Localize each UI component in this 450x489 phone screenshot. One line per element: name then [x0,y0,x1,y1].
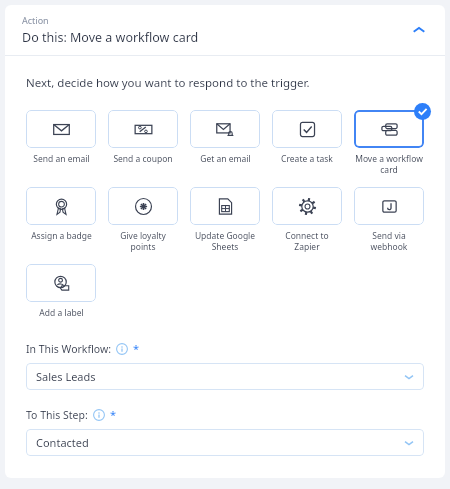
button[interactable]: Move a workflow card [354,110,424,148]
staticText: Connect to Zapier [272,230,342,252]
button[interactable]: Assign a badge [26,187,96,225]
staticText: Update Google Sheets [190,230,260,252]
staticText: * [133,341,140,356]
staticText: Contacted [36,435,404,450]
button[interactable]: Create a task [272,110,342,148]
button[interactable]: Add a label [26,264,96,302]
button[interactable]: Get an email [190,110,260,148]
staticText: Add a label [39,307,84,319]
button[interactable]: Info [116,343,128,355]
staticText: Get an email [200,153,251,165]
button[interactable]: Connect to Zapier [272,187,342,225]
staticText: Send via webhook [354,230,424,252]
button[interactable]: Sales Leads [26,363,424,390]
button[interactable]: Send an email [26,110,96,148]
staticText: Send an email [33,153,90,165]
staticText: Move a workflow card [354,153,424,175]
button[interactable]: Info [93,409,105,421]
staticText: In This Workflow: [26,342,111,356]
staticText: To This Step: [26,408,88,422]
button[interactable]: Collapse [407,18,431,42]
staticText: Create a task [281,153,333,165]
staticText: Assign a badge [31,230,92,242]
staticText: Do this: Move a workflow card [22,29,199,46]
button[interactable]: Update Google Sheets [190,187,260,225]
staticText: * [110,407,117,422]
staticText: Send a coupon [113,153,173,165]
button[interactable]: Give loyalty points [108,187,178,225]
staticText: Sales Leads [36,369,404,384]
button[interactable]: Send via webhook [354,187,424,225]
staticText: Give loyalty points [108,230,178,252]
staticText: Next, decide how you want to respond to … [26,75,310,91]
button[interactable]: Send a coupon [108,110,178,148]
button[interactable]: Contacted [26,429,424,456]
button[interactable]: Action [5,5,445,55]
staticText: Action [22,14,49,26]
